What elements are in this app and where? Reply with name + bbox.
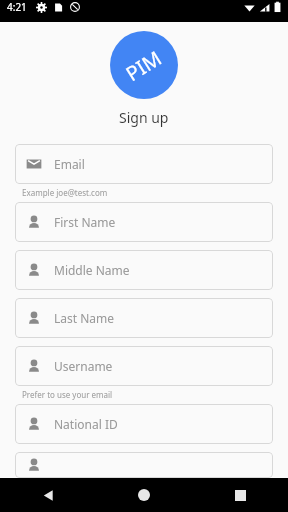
staticText: Email [54,156,85,172]
staticText: National ID [54,416,118,432]
button[interactable]: PIM logo [110,31,178,99]
staticText: Middle Name [54,262,130,278]
button[interactable]: First Name [15,202,273,242]
button[interactable]: Recent apps [220,478,260,512]
button[interactable]: Username [15,346,273,386]
button[interactable]: Middle Name [15,250,273,290]
staticText: Example joe@test.com [22,187,108,198]
staticText: Username [54,358,113,374]
staticText: 4:21 [7,0,27,14]
staticText: Sign up [119,108,169,127]
button[interactable]: Email [15,144,273,184]
button[interactable]: National ID [15,404,273,444]
staticText: Last Name [54,310,115,326]
staticText: First Name [54,214,116,230]
button[interactable] [15,452,273,478]
button[interactable]: Home [124,478,164,512]
button[interactable]: Back [28,478,68,512]
staticText: Prefer to use your email [22,389,113,400]
staticText: PIM [121,44,167,87]
button[interactable]: Last Name [15,298,273,338]
